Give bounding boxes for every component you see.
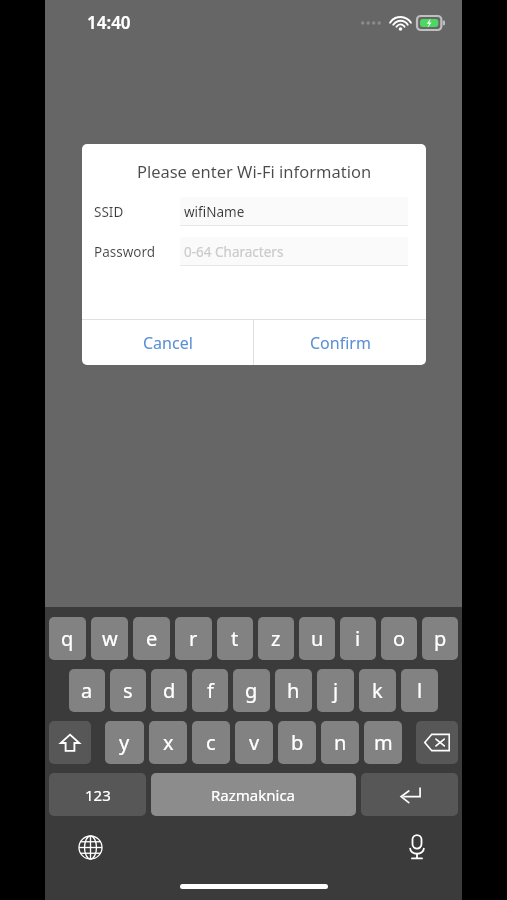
staticText: q bbox=[61, 625, 74, 652]
staticText: y bbox=[119, 729, 130, 756]
button[interactable]: u bbox=[299, 617, 335, 660]
staticText: l bbox=[417, 677, 423, 704]
staticText: j bbox=[333, 677, 339, 704]
staticText: i bbox=[355, 625, 361, 652]
staticText: u bbox=[311, 625, 324, 652]
button[interactable]: r bbox=[175, 617, 212, 660]
button[interactable]: Shift bbox=[49, 721, 91, 764]
button[interactable]: h bbox=[275, 669, 312, 712]
staticText: p bbox=[434, 625, 447, 652]
button[interactable]: y bbox=[105, 721, 144, 764]
button[interactable]: Dictation bbox=[400, 830, 434, 864]
button[interactable]: v bbox=[235, 721, 273, 764]
button[interactable]: c bbox=[192, 721, 230, 764]
button[interactable]: f bbox=[192, 669, 228, 712]
button[interactable]: g bbox=[233, 669, 270, 712]
staticText: 0-64 Characters bbox=[184, 243, 284, 261]
button[interactable]: i bbox=[340, 617, 376, 660]
button[interactable]: a bbox=[69, 669, 105, 712]
staticText: k bbox=[372, 677, 383, 704]
button[interactable]: z bbox=[258, 617, 294, 660]
staticText: Password bbox=[94, 243, 180, 261]
staticText: n bbox=[334, 729, 347, 756]
button[interactable]: t bbox=[217, 617, 253, 660]
staticText: Please enter Wi-Fi information bbox=[82, 160, 426, 182]
staticText: z bbox=[271, 625, 281, 652]
button[interactable]: n bbox=[321, 721, 359, 764]
staticText: x bbox=[163, 729, 174, 756]
button[interactable]: Razmaknica bbox=[151, 773, 356, 816]
staticText: f bbox=[207, 677, 214, 704]
staticText: t bbox=[231, 625, 239, 652]
staticText: e bbox=[146, 625, 158, 652]
staticText: o bbox=[393, 625, 406, 652]
staticText: r bbox=[189, 625, 198, 652]
staticText: d bbox=[163, 677, 176, 704]
staticText: g bbox=[245, 677, 258, 704]
staticText: m bbox=[374, 729, 393, 756]
staticText: 14:40 bbox=[87, 11, 131, 34]
button[interactable]: b bbox=[278, 721, 316, 764]
staticText: 123 bbox=[85, 785, 111, 805]
button[interactable]: p bbox=[422, 617, 458, 660]
button[interactable]: Backspace bbox=[416, 721, 458, 764]
button[interactable]: e bbox=[133, 617, 170, 660]
button[interactable]: s bbox=[110, 669, 146, 712]
button[interactable]: j bbox=[317, 669, 354, 712]
staticText: h bbox=[287, 677, 300, 704]
staticText: c bbox=[206, 729, 216, 756]
button[interactable]: d bbox=[151, 669, 187, 712]
staticText: Cancel bbox=[143, 332, 193, 354]
staticText: a bbox=[81, 677, 93, 704]
button[interactable]: Cancel bbox=[82, 320, 253, 365]
staticText: b bbox=[291, 729, 304, 756]
button[interactable]: Return bbox=[361, 773, 458, 816]
button[interactable]: Confirm bbox=[254, 320, 426, 365]
staticText: wifiName bbox=[184, 203, 245, 221]
staticText: s bbox=[123, 677, 133, 704]
button[interactable]: 123 bbox=[49, 773, 146, 816]
button[interactable]: l bbox=[401, 669, 438, 712]
button[interactable]: m bbox=[364, 721, 402, 764]
button[interactable]: q bbox=[49, 617, 86, 660]
staticText: Razmaknica bbox=[211, 785, 296, 805]
button[interactable]: o bbox=[381, 617, 417, 660]
staticText: Confirm bbox=[310, 332, 371, 354]
button[interactable]: w bbox=[91, 617, 128, 660]
button[interactable]: x bbox=[149, 721, 187, 764]
staticText: SSID bbox=[94, 203, 180, 221]
staticText: w bbox=[102, 625, 118, 652]
button[interactable]: k bbox=[359, 669, 396, 712]
button[interactable]: Change keyboard language bbox=[73, 830, 107, 864]
staticText: v bbox=[249, 729, 260, 756]
